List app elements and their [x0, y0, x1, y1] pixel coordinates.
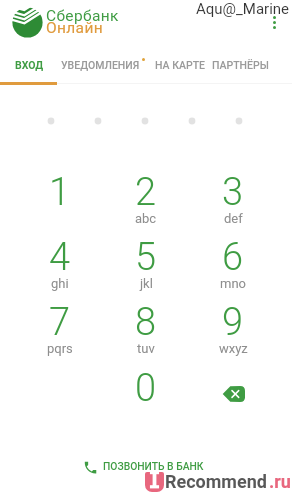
button[interactable]: 3 [190, 170, 276, 234]
staticText: jkl [140, 276, 153, 291]
staticText: ПОЗВОНИТЬ В БАНК [103, 460, 204, 472]
button[interactable]: 4 [17, 235, 103, 299]
staticText: .ru [269, 471, 291, 492]
button[interactable]: ПАРТНЁРЫ [212, 59, 269, 81]
staticText: УВЕДОМЛЕНИЯ [61, 59, 140, 71]
button[interactable]: УВЕДОМЛЕНИЯ [61, 59, 140, 81]
button[interactable]: 1 [17, 170, 103, 234]
staticText: Aqu@_Marine [196, 0, 290, 18]
staticText: Сбербанк [46, 7, 119, 25]
button[interactable]: 7 [17, 300, 103, 364]
staticText: ВХОД [15, 59, 44, 71]
staticText: 2 [135, 170, 157, 210]
button[interactable]: 8 [103, 300, 189, 364]
button[interactable]: 0 [103, 366, 189, 430]
staticText: mno [220, 276, 246, 291]
staticText: wxyz [219, 341, 248, 356]
button[interactable]: 9 [190, 300, 276, 364]
staticText: 1 [49, 170, 71, 210]
staticText: 8 [135, 300, 157, 340]
staticText: 7 [49, 300, 71, 340]
button[interactable]: 5 [103, 235, 189, 299]
button[interactable]: 6 [190, 235, 276, 299]
staticText: НА КАРТЕ [155, 59, 205, 71]
staticText: pqrs [47, 341, 73, 356]
staticText: 9 [222, 300, 244, 340]
button[interactable]: Backspace [190, 369, 276, 418]
staticText: Онлайн [46, 19, 103, 37]
staticText: Recommend [165, 471, 267, 492]
staticText: ghi [51, 276, 69, 291]
staticText: abc [135, 211, 157, 226]
staticText: 6 [222, 235, 244, 275]
button[interactable]: More options [268, 13, 281, 32]
button[interactable]: ПОЗВОНИТЬ В БАНК [72, 452, 214, 482]
staticText: 4 [49, 235, 71, 275]
button[interactable]: ВХОД [15, 59, 44, 81]
staticText: 3 [222, 170, 244, 210]
button[interactable]: 2 [103, 170, 189, 234]
staticText: 0 [135, 366, 157, 406]
staticText: ПАРТНЁРЫ [212, 59, 269, 71]
staticText: def [224, 211, 243, 226]
staticText: tuv [137, 341, 155, 356]
staticText: 5 [135, 235, 157, 275]
button[interactable]: НА КАРТЕ [155, 59, 205, 81]
